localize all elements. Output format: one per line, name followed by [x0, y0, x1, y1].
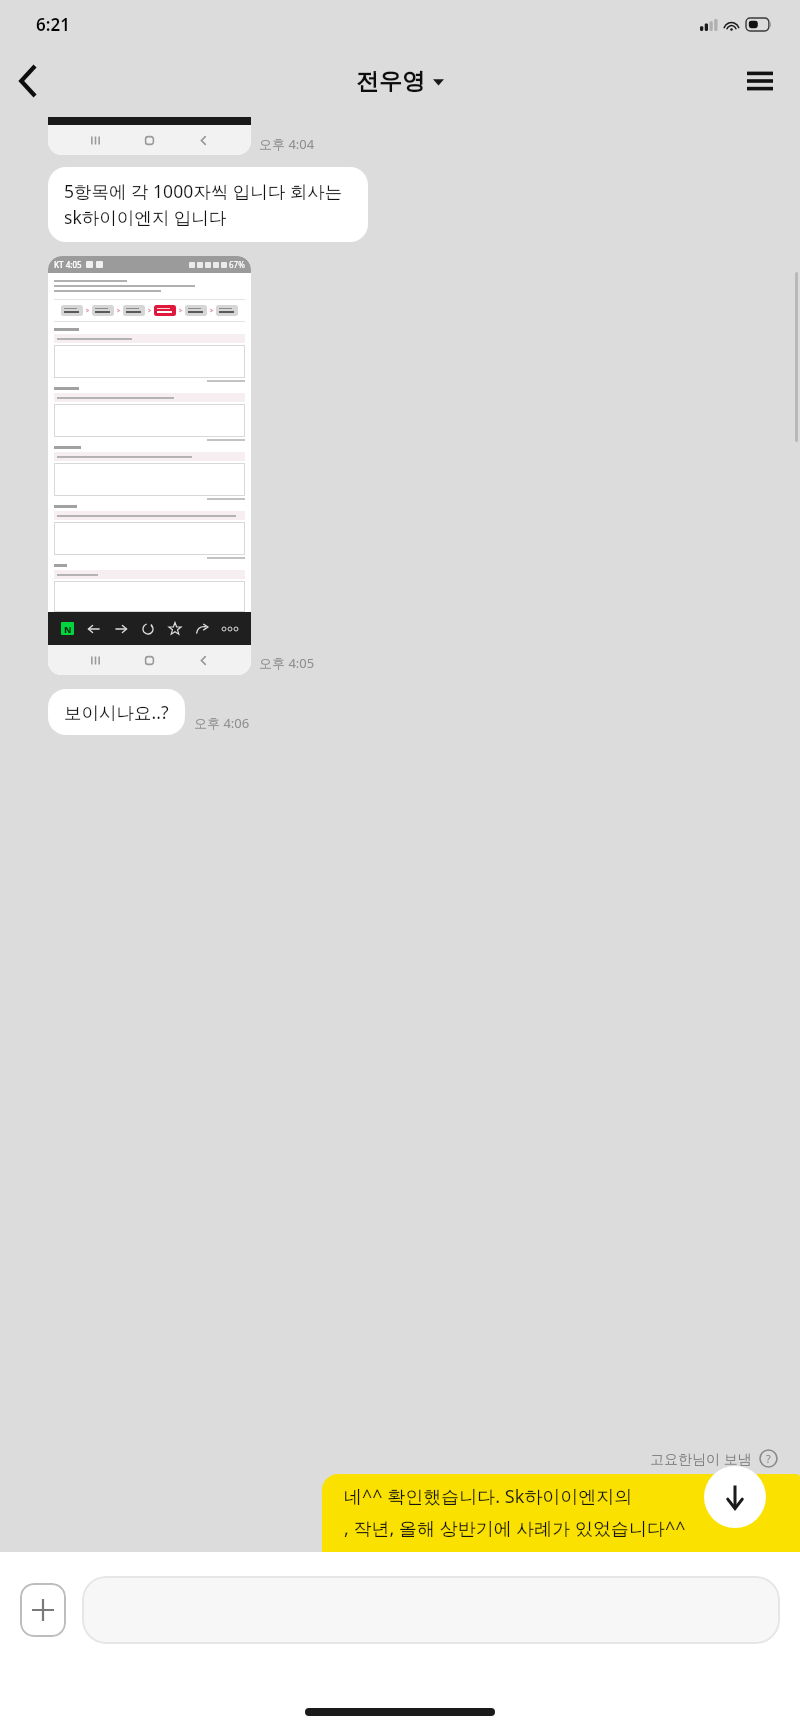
staticText: N — [64, 623, 72, 635]
staticText: ? — [766, 1451, 771, 1466]
staticText: 오후 4:06 — [194, 714, 250, 732]
staticText: 오후 4:05 — [259, 654, 315, 672]
button[interactable]: Menu — [732, 53, 788, 109]
staticText: 6:21 — [36, 13, 70, 36]
button[interactable]: Message input — [82, 1576, 780, 1644]
staticText: 네^^ 확인했습니다. Sk하이이엔지의 , 작년, 올해 상반기에 사례가 있… — [344, 1484, 686, 1540]
staticText: 67% — [229, 259, 245, 270]
button[interactable]: Info — [759, 1449, 778, 1468]
button[interactable]: 네^^ 확인했습니다. Sk하이이엔지의 , 작년, 올해 상반기에 사례가 있… — [322, 1474, 800, 1552]
staticText: 오후 4:04 — [259, 135, 315, 153]
button[interactable] — [48, 117, 251, 155]
staticText: 5항목에 각 1000자씩 입니다 회사는 sk하이이엔지 입니다 — [64, 179, 352, 230]
button[interactable]: Scroll to bottom — [704, 1466, 766, 1528]
button[interactable]: Back — [0, 53, 56, 109]
staticText: KT 4:05 — [54, 259, 82, 270]
button[interactable]: 보이시나요..? — [48, 689, 185, 735]
staticText: 전우영 — [356, 67, 425, 96]
button[interactable]: Photo message — [48, 256, 251, 675]
button[interactable]: 전우영 — [356, 67, 444, 96]
staticText: 고요한님이 보냄 — [650, 1449, 752, 1468]
button[interactable]: Add attachment — [20, 1583, 66, 1637]
staticText: 보이시나요..? — [64, 700, 169, 724]
button[interactable]: 5항목에 각 1000자씩 입니다 회사는 sk하이이엔지 입니다 — [48, 167, 368, 242]
